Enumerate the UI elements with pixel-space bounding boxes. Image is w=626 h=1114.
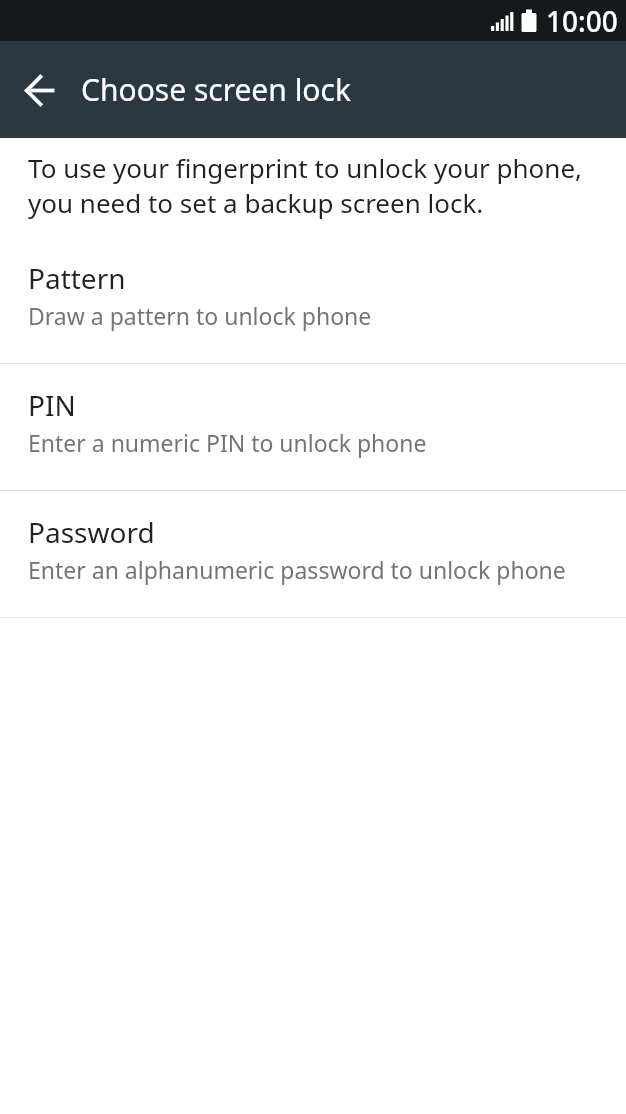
staticText: Draw a pattern to unlock phone [28, 300, 372, 331]
staticText: Pattern [28, 259, 126, 297]
staticText: To use your fingerprint to unlock your p… [28, 150, 583, 185]
staticText: 10:00 [546, 2, 618, 40]
button[interactable] [12, 62, 68, 118]
staticText: you need to set a backup screen lock. [28, 185, 484, 220]
staticText: Enter a numeric PIN to unlock phone [28, 427, 427, 458]
button[interactable]: Pattern [0, 237, 626, 363]
button[interactable]: Password [0, 491, 626, 617]
staticText: Enter an alphanumeric password to unlock… [28, 554, 566, 585]
button[interactable]: PIN [0, 364, 626, 490]
staticText: Password [28, 513, 155, 551]
staticText: Choose screen lock [81, 69, 351, 110]
staticText: PIN [28, 386, 76, 424]
